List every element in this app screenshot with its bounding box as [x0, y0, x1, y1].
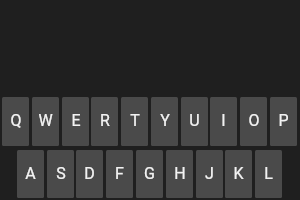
button[interactable]: E: [62, 97, 89, 146]
button[interactable]: W: [32, 97, 59, 146]
staticText: J: [205, 164, 214, 183]
button[interactable]: J: [196, 150, 223, 198]
staticText: F: [115, 164, 124, 183]
staticText: Y: [160, 111, 170, 130]
staticText: G: [144, 164, 155, 183]
button[interactable]: P: [270, 97, 297, 146]
button[interactable]: T: [121, 97, 148, 146]
staticText: I: [221, 111, 226, 130]
staticText: W: [38, 111, 53, 130]
staticText: P: [278, 111, 289, 130]
button[interactable]: F: [106, 150, 133, 198]
button[interactable]: S: [47, 150, 74, 198]
staticText: D: [84, 164, 95, 183]
staticText: K: [233, 164, 244, 183]
button[interactable]: R: [91, 97, 118, 146]
button[interactable]: U: [181, 97, 208, 146]
staticText: T: [130, 111, 140, 130]
staticText: S: [56, 164, 66, 183]
button[interactable]: O: [240, 97, 267, 146]
button[interactable]: Q: [2, 97, 29, 146]
button[interactable]: D: [76, 150, 103, 198]
staticText: A: [25, 164, 36, 183]
staticText: E: [71, 111, 81, 130]
button[interactable]: H: [166, 150, 193, 198]
staticText: L: [264, 164, 273, 183]
staticText: Q: [10, 111, 22, 130]
staticText: U: [189, 111, 200, 130]
button[interactable]: Y: [151, 97, 178, 146]
staticText: H: [174, 164, 186, 183]
button[interactable]: K: [225, 150, 252, 198]
staticText: O: [248, 111, 260, 130]
staticText: R: [100, 111, 110, 130]
button[interactable]: G: [136, 150, 163, 198]
button[interactable]: I: [210, 97, 237, 146]
button[interactable]: L: [255, 150, 282, 198]
button[interactable]: A: [17, 150, 44, 198]
